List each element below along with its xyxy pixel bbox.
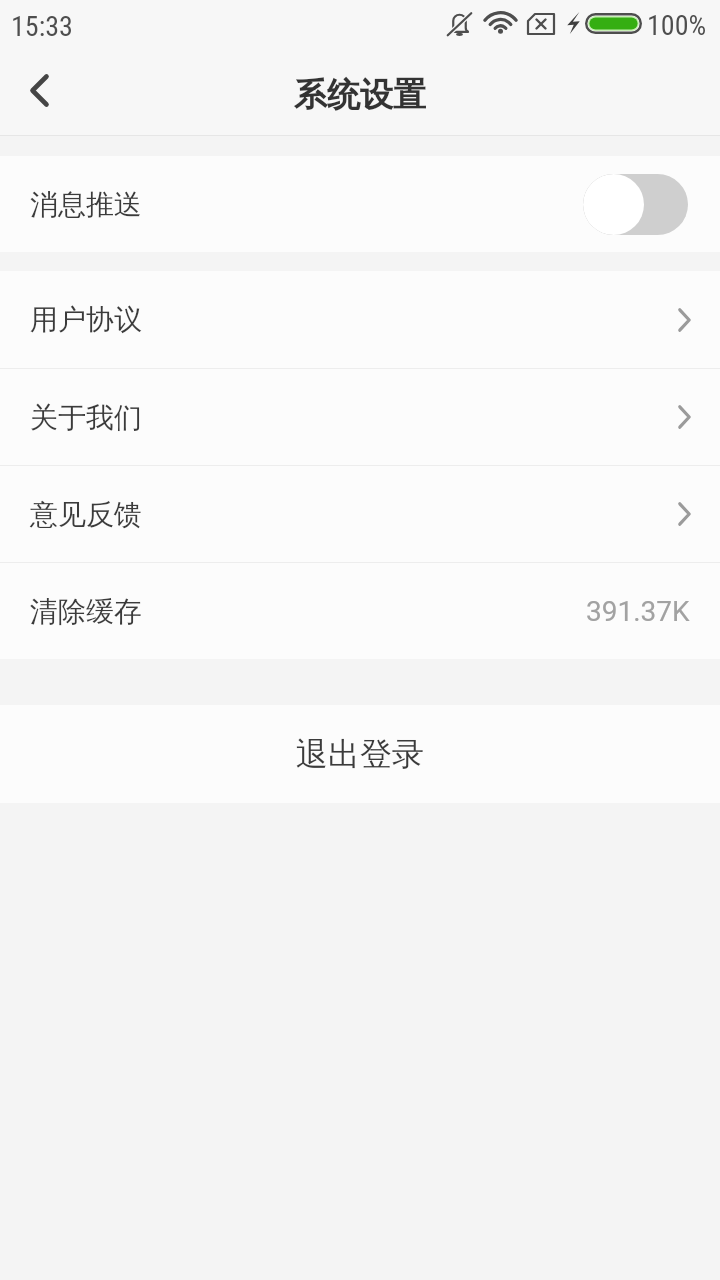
staticText: 用户协议 <box>30 302 142 337</box>
staticText: 100% <box>647 9 707 42</box>
button[interactable]: 消息推送 <box>0 156 720 252</box>
staticText: 391.37K <box>586 595 690 628</box>
staticText: 系统设置 <box>294 74 426 116</box>
button[interactable]: 关于我们 <box>0 369 720 465</box>
staticText: 关于我们 <box>30 400 142 435</box>
button[interactable]: 意见反馈 <box>0 466 720 562</box>
staticText: 消息推送 <box>30 187 142 222</box>
button[interactable]: 用户协议 <box>0 271 720 368</box>
button[interactable]: 清除缓存 <box>0 563 720 659</box>
staticText: 15:33 <box>11 10 73 43</box>
staticText: 退出登录 <box>296 734 424 774</box>
button[interactable]: 消息推送开关，已关闭 <box>583 174 688 235</box>
staticText: 清除缓存 <box>30 594 142 629</box>
button[interactable]: Back <box>0 51 78 129</box>
staticText: 意见反馈 <box>30 497 142 532</box>
button[interactable]: 退出登录 <box>0 705 720 803</box>
